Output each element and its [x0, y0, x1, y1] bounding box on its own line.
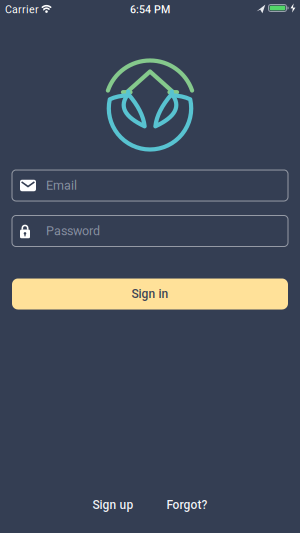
button[interactable]: Sign in — [12, 278, 288, 309]
staticText: Sign up — [92, 498, 133, 512]
staticText: Carrier — [5, 3, 39, 16]
button[interactable]: Email — [12, 170, 288, 201]
button[interactable]: Sign up — [85, 493, 141, 517]
staticText: Email — [46, 178, 77, 193]
button[interactable]: Password — [12, 215, 288, 246]
staticText: Sign in — [131, 287, 168, 301]
button[interactable]: Forgot? — [159, 493, 215, 517]
staticText: Password — [46, 224, 100, 238]
staticText: Forgot? — [166, 498, 207, 512]
staticText: 6:54 PM — [130, 3, 170, 16]
